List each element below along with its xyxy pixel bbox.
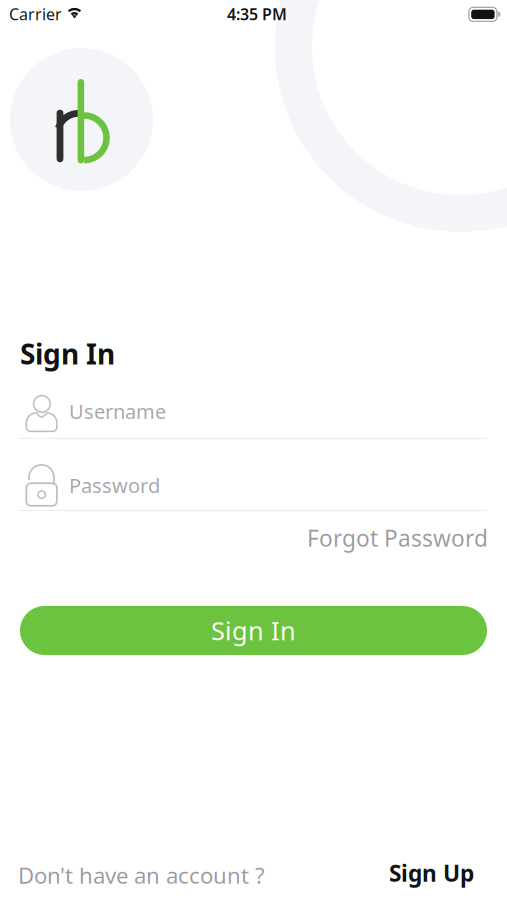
staticText: Don't have an account ? bbox=[18, 860, 265, 890]
staticText: Username bbox=[69, 398, 166, 425]
staticText: Sign In bbox=[211, 614, 296, 647]
staticText: Password bbox=[69, 472, 160, 499]
staticText: 4:35 PM bbox=[227, 3, 287, 25]
staticText: Forgot Password bbox=[307, 523, 488, 553]
button[interactable]: Forgot Password bbox=[268, 524, 488, 552]
button[interactable]: Sign Up bbox=[389, 858, 474, 888]
staticText: Sign Up bbox=[389, 858, 474, 888]
button[interactable]: Sign In bbox=[20, 606, 487, 655]
staticText: Sign In bbox=[20, 335, 115, 372]
staticText: Carrier bbox=[9, 3, 62, 25]
